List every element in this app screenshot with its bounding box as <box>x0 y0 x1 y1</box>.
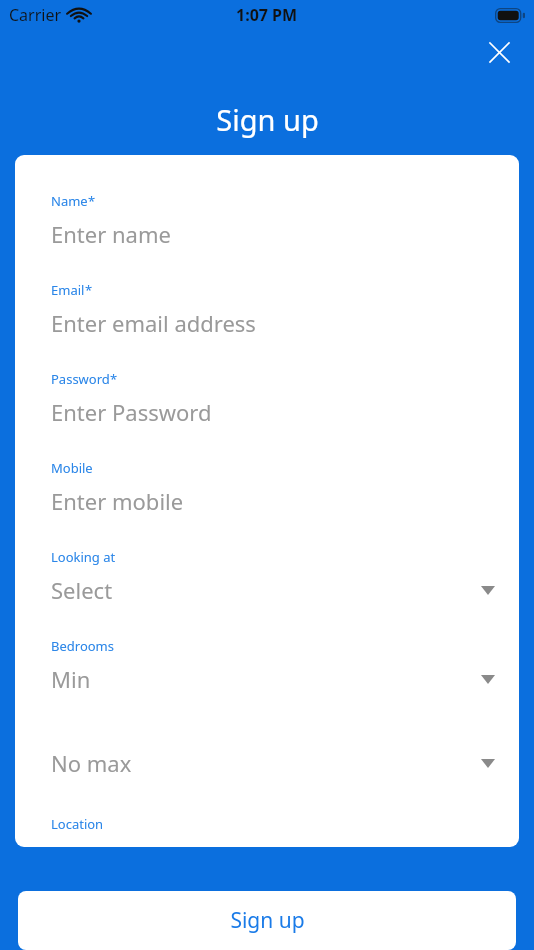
staticText: Mobile <box>51 459 93 477</box>
staticText: Min <box>51 664 481 694</box>
staticText: * <box>88 192 96 210</box>
button[interactable]: Location <box>15 800 519 847</box>
button[interactable]: Name <box>15 155 519 266</box>
staticText: Enter Password <box>51 397 499 427</box>
staticText: Sign up <box>216 100 319 139</box>
staticText: * <box>110 370 118 388</box>
button[interactable]: Password <box>15 355 519 444</box>
staticText: Select <box>51 575 481 605</box>
staticText: Sign up <box>230 906 305 935</box>
staticText: No max <box>51 748 481 778</box>
staticText: Email <box>51 281 85 299</box>
staticText: Bedrooms <box>51 637 114 655</box>
button[interactable]: Mobile <box>15 444 519 533</box>
button[interactable]: Looking at <box>15 533 519 622</box>
staticText: Location <box>51 815 104 833</box>
staticText: Carrier <box>9 4 62 26</box>
staticText: Enter name <box>51 219 499 249</box>
button[interactable]: Bedrooms <box>15 622 519 711</box>
staticText: 1:07 PM <box>236 4 298 26</box>
button[interactable]: No max <box>15 711 519 800</box>
staticText: Enter mobile <box>51 486 499 516</box>
button[interactable]: Email <box>15 266 519 355</box>
button[interactable]: Sign up <box>18 891 516 950</box>
staticText: Looking at <box>51 548 116 566</box>
staticText: Password <box>51 370 110 388</box>
staticText: * <box>85 281 93 299</box>
staticText: Enter email address <box>51 308 499 338</box>
button[interactable]: Close <box>475 28 523 76</box>
staticText: Name <box>51 192 88 210</box>
